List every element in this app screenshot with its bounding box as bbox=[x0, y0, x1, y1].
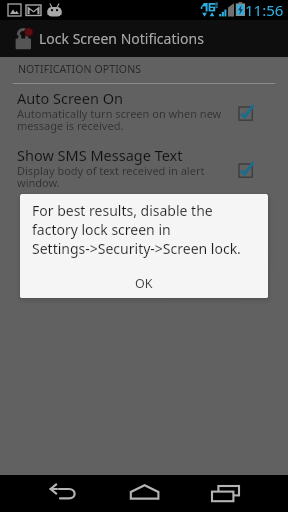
staticText: Display body of text received in alert w… bbox=[17, 163, 205, 190]
staticText: Lock Screen Notifications bbox=[39, 29, 204, 48]
staticText: Auto Screen On bbox=[17, 88, 123, 108]
button[interactable]: Back bbox=[0, 475, 96, 512]
staticText: Automatically turn screen on when new me… bbox=[17, 106, 222, 133]
button[interactable]: Show SMS Message Text bbox=[0, 145, 288, 191]
staticText: NOTIFICATION OPTIONS bbox=[18, 62, 142, 76]
staticText: For best results, disable the factory lo… bbox=[32, 201, 241, 258]
staticText: 11:56 bbox=[245, 0, 284, 20]
button[interactable]: Home bbox=[96, 475, 192, 512]
button[interactable]: Auto Screen On bbox=[0, 88, 288, 134]
button[interactable]: OK bbox=[20, 268, 268, 298]
button[interactable]: Recent apps bbox=[192, 475, 288, 512]
staticText: OK bbox=[135, 275, 153, 292]
staticText: Show SMS Message Text bbox=[17, 145, 183, 165]
